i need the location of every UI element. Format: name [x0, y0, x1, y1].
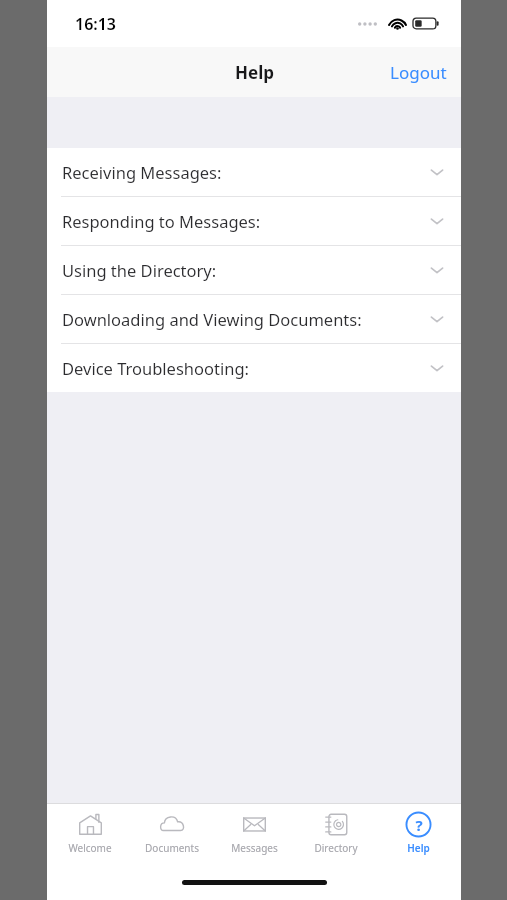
- staticText: Device Troubleshooting:: [62, 357, 429, 379]
- staticText: Logout: [390, 61, 447, 84]
- staticText: Directory: [314, 841, 358, 855]
- button[interactable]: Using the Directory:: [47, 246, 461, 294]
- button[interactable]: Logout: [376, 51, 461, 94]
- staticText: ?: [415, 815, 423, 835]
- button[interactable]: Messages: [215, 804, 293, 861]
- staticText: Downloading and Viewing Documents:: [62, 308, 429, 330]
- button[interactable]: Welcome: [51, 804, 129, 861]
- staticText: Help: [235, 61, 274, 84]
- staticText: Help: [407, 841, 430, 855]
- staticText: Using the Directory:: [62, 259, 429, 281]
- staticText: Receiving Messages:: [62, 161, 429, 183]
- staticText: Welcome: [68, 841, 112, 855]
- staticText: Messages: [231, 841, 278, 855]
- button[interactable]: Downloading and Viewing Documents:: [47, 295, 461, 343]
- button[interactable]: Device Troubleshooting:: [47, 344, 461, 392]
- button[interactable]: Responding to Messages:: [47, 197, 461, 245]
- button[interactable]: Receiving Messages:: [47, 148, 461, 196]
- button[interactable]: Directory: [297, 804, 375, 861]
- staticText: Documents: [145, 841, 199, 855]
- button[interactable]: ?: [379, 804, 457, 861]
- button[interactable]: Documents: [133, 804, 211, 861]
- staticText: Responding to Messages:: [62, 210, 429, 232]
- staticText: 16:13: [75, 13, 117, 35]
